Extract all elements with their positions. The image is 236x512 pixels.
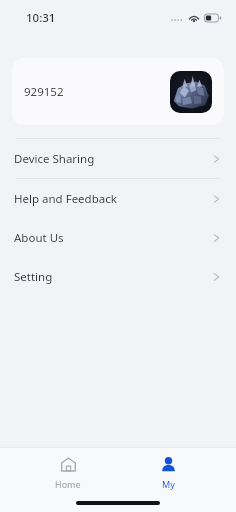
other: My — [159, 455, 178, 474]
button[interactable]: Setting — [0, 257, 236, 296]
staticText: 929152 — [24, 84, 64, 100]
staticText: Setting — [14, 269, 53, 285]
staticText: 10:31 — [26, 10, 56, 26]
button[interactable]: Home — [35, 448, 101, 490]
button[interactable]: My — [135, 448, 201, 490]
staticText: About Us — [14, 230, 64, 246]
staticText: Device Sharing — [14, 151, 95, 167]
button[interactable]: Device Sharing — [0, 139, 236, 178]
button[interactable]: About Us — [0, 218, 236, 257]
button[interactable]: Help and Feedback — [0, 179, 236, 218]
staticText: Help and Feedback — [14, 191, 117, 207]
button[interactable]: 929152 — [12, 58, 224, 125]
other: Device preview — [170, 71, 212, 113]
staticText: My — [162, 478, 175, 490]
staticText: Home — [55, 478, 81, 490]
other: Home — [59, 455, 78, 474]
